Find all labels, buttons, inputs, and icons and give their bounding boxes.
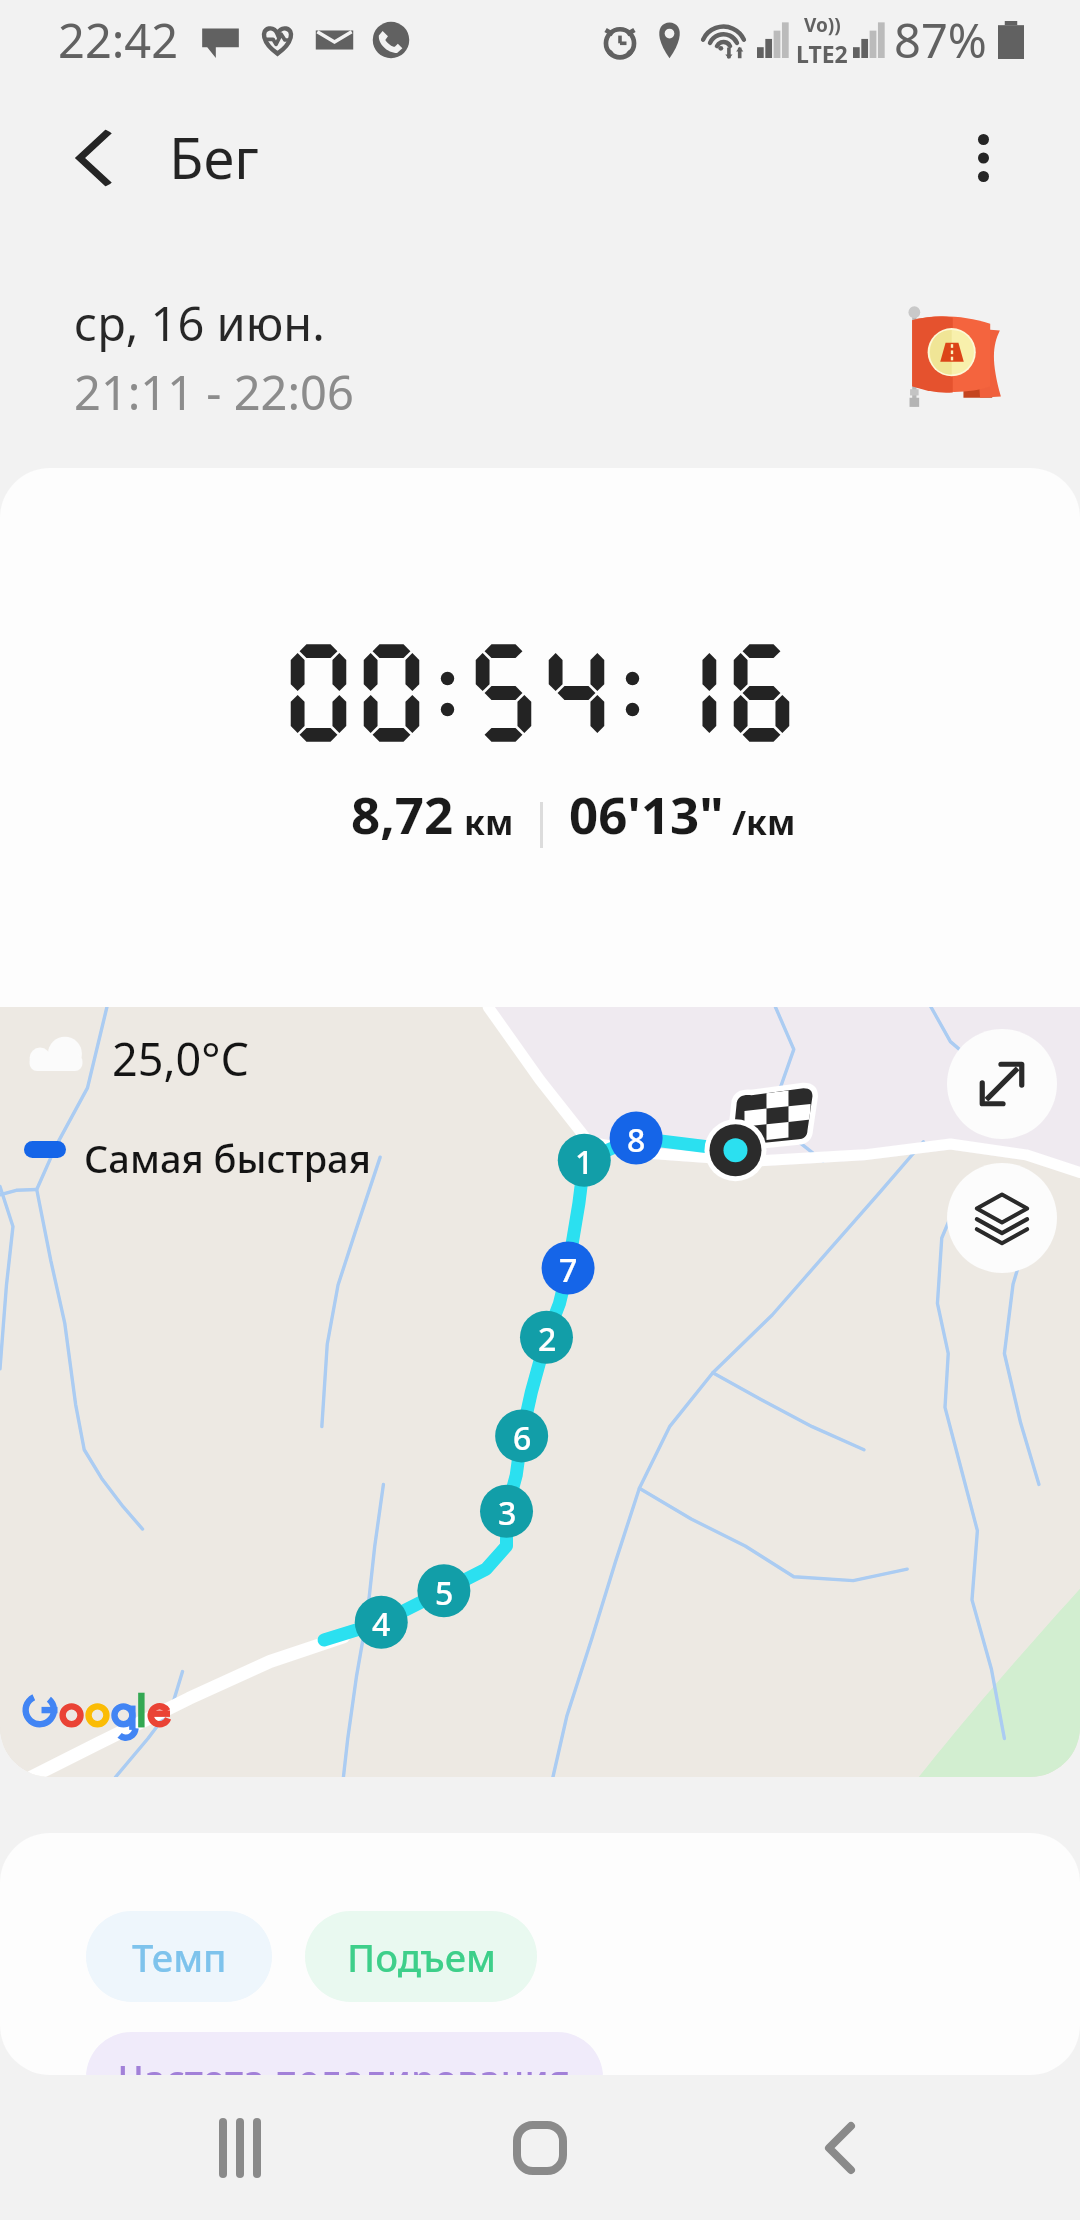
button[interactable]: Частота педалирования (86, 2032, 603, 2123)
staticText: Частота педалирования (118, 2052, 571, 2104)
staticText: 06'13" (569, 779, 724, 848)
button[interactable]: More options (947, 122, 1019, 194)
staticText: 4 (372, 1602, 391, 1642)
button[interactable]: Expand map (947, 1029, 1057, 1139)
button[interactable]: Темп (86, 1911, 272, 2002)
staticText: 2 (538, 1317, 557, 1357)
staticText: 7 (559, 1248, 578, 1288)
staticText: 5 (435, 1571, 454, 1611)
staticText: 6 (513, 1416, 532, 1456)
button[interactable] (0, 1833, 1080, 2075)
button[interactable]: 8,72 (0, 468, 1080, 1007)
staticText: Подъем (347, 1931, 496, 1983)
staticText: Vo)) (804, 12, 841, 38)
button[interactable]: Map layers (947, 1163, 1057, 1273)
button[interactable]: Back (780, 2088, 900, 2208)
staticText: 22:42 (58, 8, 179, 72)
staticText: 1 (575, 1140, 594, 1180)
staticText: км (464, 799, 514, 845)
button[interactable]: 1 (0, 1007, 1080, 1777)
staticText: 87% (894, 8, 987, 72)
staticText: Самая быстрая (84, 1132, 371, 1184)
button[interactable]: Подъем (305, 1911, 537, 2002)
staticText: 8 (627, 1118, 646, 1158)
button[interactable]: Home (480, 2088, 600, 2208)
staticText: Бег (169, 119, 259, 195)
staticText: 21:11 - 22:06 (74, 360, 354, 424)
button[interactable]: Back (62, 127, 124, 189)
button[interactable]: Recent apps (180, 2088, 300, 2208)
staticText: ср, 16 июн. (74, 291, 325, 355)
staticText: Темп (132, 1931, 227, 1983)
staticText: 25,0°C (112, 1028, 249, 1089)
staticText: 8,72 (351, 779, 454, 848)
staticText: 3 (498, 1491, 517, 1531)
staticText: /км (732, 799, 796, 845)
staticText: LTE2 (796, 38, 848, 69)
